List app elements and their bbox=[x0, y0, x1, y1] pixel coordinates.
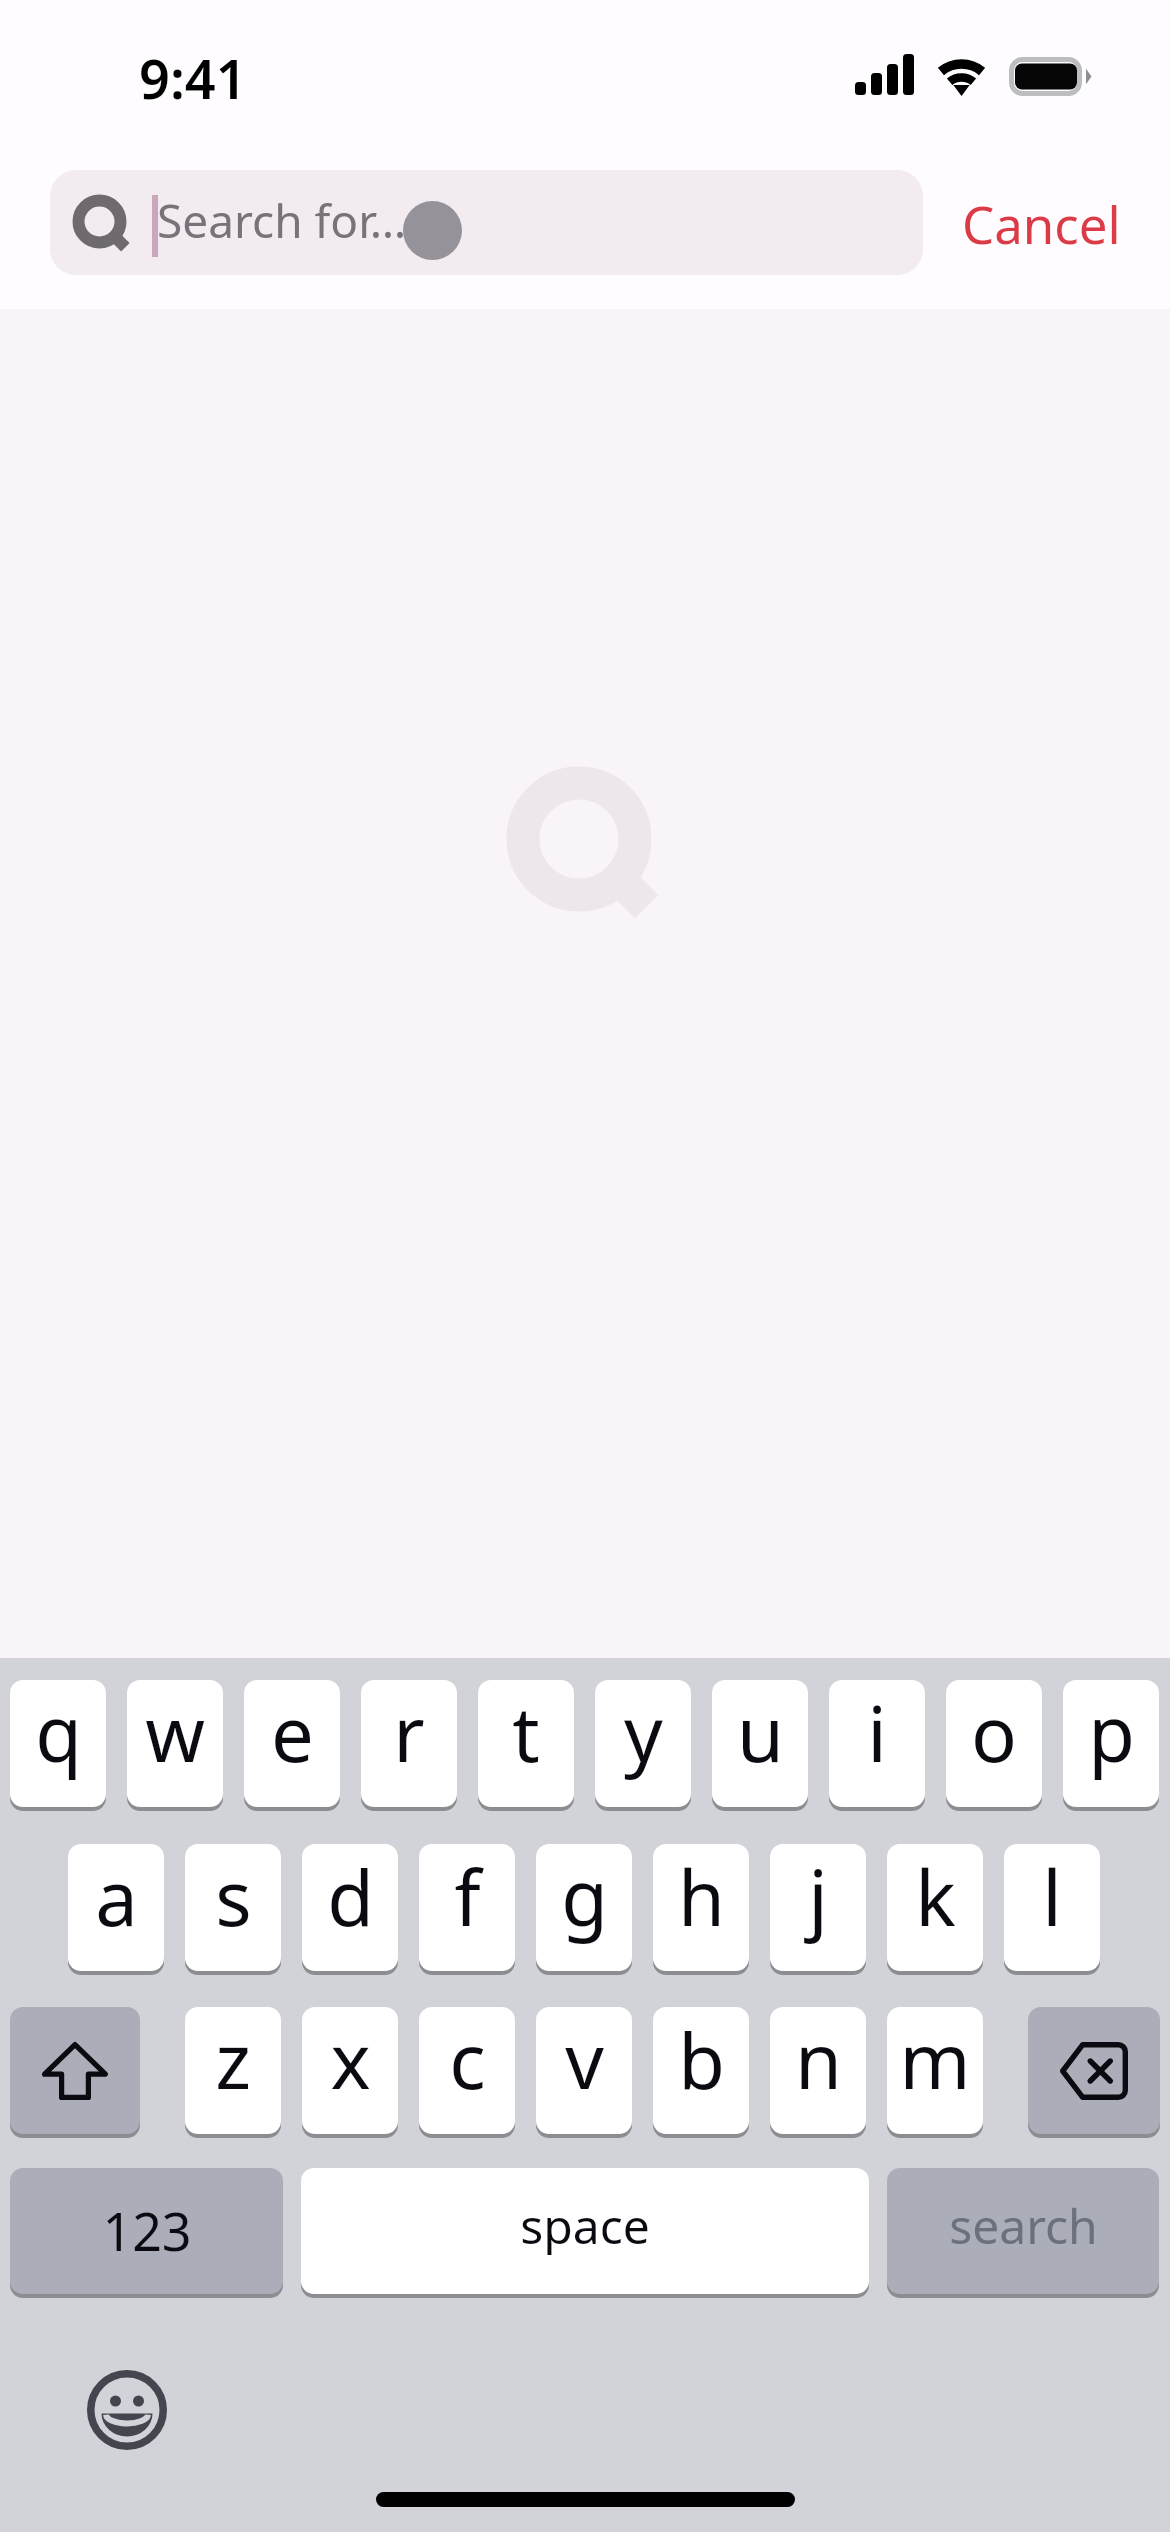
staticText: v bbox=[565, 2008, 604, 2112]
staticText: y bbox=[624, 1681, 663, 1785]
button[interactable]: space bbox=[301, 2168, 869, 2294]
staticText: a bbox=[95, 1845, 138, 1949]
staticText: j bbox=[808, 1845, 828, 1949]
staticText: c bbox=[449, 2008, 486, 2112]
staticText: w bbox=[145, 1681, 205, 1785]
staticText: g bbox=[561, 1845, 608, 1949]
staticText: b bbox=[678, 2008, 725, 2112]
button[interactable]: l bbox=[1004, 1844, 1100, 1971]
button[interactable]: 123 bbox=[10, 2168, 283, 2294]
staticText: 123 bbox=[102, 2195, 192, 2266]
button[interactable]: j bbox=[770, 1844, 866, 1971]
staticText: p bbox=[1088, 1681, 1135, 1785]
staticText: Search for… bbox=[157, 189, 407, 252]
staticText: 9:41 bbox=[139, 41, 247, 115]
staticText: Cancel bbox=[962, 189, 1121, 258]
button[interactable]: i bbox=[829, 1680, 925, 1807]
staticText: k bbox=[915, 1845, 956, 1949]
staticText: search bbox=[949, 2193, 1098, 2258]
staticText: l bbox=[1042, 1845, 1062, 1949]
button[interactable]: m bbox=[887, 2007, 983, 2134]
button[interactable]: t bbox=[478, 1680, 574, 1807]
button[interactable]: k bbox=[887, 1844, 983, 1971]
button[interactable]: f bbox=[419, 1844, 515, 1971]
button[interactable]: a bbox=[68, 1844, 164, 1971]
staticText: n bbox=[795, 2008, 842, 2112]
staticText: x bbox=[330, 2008, 371, 2112]
button[interactable]: p bbox=[1063, 1680, 1159, 1807]
staticText: q bbox=[35, 1681, 82, 1785]
button[interactable]: r bbox=[361, 1680, 457, 1807]
staticText: u bbox=[737, 1681, 784, 1785]
button[interactable]: d bbox=[302, 1844, 398, 1971]
button[interactable]: o bbox=[946, 1680, 1042, 1807]
staticText: t bbox=[512, 1681, 540, 1785]
staticText: d bbox=[327, 1845, 374, 1949]
staticText: r bbox=[393, 1681, 425, 1785]
staticText: o bbox=[971, 1681, 1017, 1785]
staticText: i bbox=[867, 1681, 887, 1785]
button[interactable]: Shift bbox=[10, 2007, 140, 2134]
button[interactable]: Search field bbox=[50, 170, 923, 275]
button[interactable]: c bbox=[419, 2007, 515, 2134]
button[interactable]: q bbox=[10, 1680, 106, 1807]
button[interactable]: h bbox=[653, 1844, 749, 1971]
staticText: h bbox=[678, 1845, 725, 1949]
staticText: z bbox=[215, 2008, 251, 2112]
staticText: space bbox=[520, 2193, 650, 2258]
button[interactable]: Backspace bbox=[1028, 2007, 1160, 2134]
button[interactable]: y bbox=[595, 1680, 691, 1807]
button[interactable]: search bbox=[887, 2168, 1159, 2294]
button[interactable]: s bbox=[185, 1844, 281, 1971]
button[interactable]: x bbox=[302, 2007, 398, 2134]
button[interactable]: z bbox=[185, 2007, 281, 2134]
button[interactable]: n bbox=[770, 2007, 866, 2134]
staticText: m bbox=[899, 2008, 971, 2112]
button[interactable]: Cancel bbox=[946, 171, 1137, 276]
button[interactable]: g bbox=[536, 1844, 632, 1971]
button[interactable]: v bbox=[536, 2007, 632, 2134]
staticText: f bbox=[454, 1845, 481, 1949]
button[interactable]: w bbox=[127, 1680, 223, 1807]
button[interactable]: Emoji keyboard bbox=[83, 2366, 171, 2454]
staticText: s bbox=[215, 1845, 252, 1949]
button[interactable]: e bbox=[244, 1680, 340, 1807]
button[interactable]: u bbox=[712, 1680, 808, 1807]
staticText: e bbox=[271, 1681, 314, 1785]
button[interactable]: b bbox=[653, 2007, 749, 2134]
